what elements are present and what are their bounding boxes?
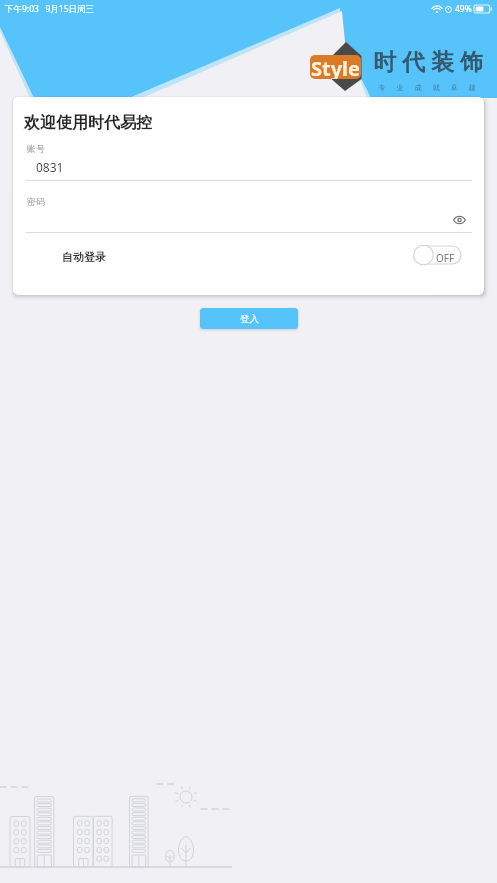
staticText: 自动登录 [62,250,106,264]
staticText: 登入 [240,313,259,325]
staticText: 账号 [27,143,45,154]
staticText: 0831 [36,159,64,175]
staticText: 下午9:03 9月15日周三 [5,3,95,15]
button[interactable]: OFF [400,243,462,269]
staticText: OFF [436,251,455,265]
staticText: Style [311,55,361,79]
staticText: 密码 [27,196,45,207]
staticText: 时代装饰 [370,48,486,77]
button[interactable]: Show password [448,209,470,231]
staticText: 49% [455,3,472,15]
staticText: 专业成就卓越 [373,83,481,92]
staticText: 欢迎使用时代易控 [24,113,152,133]
button[interactable]: 登入 [200,308,298,329]
